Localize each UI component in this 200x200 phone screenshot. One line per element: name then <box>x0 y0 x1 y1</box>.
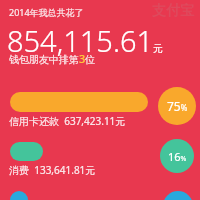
button[interactable]: 16% <box>160 139 194 173</box>
button[interactable]: Spending amount bar <box>10 142 43 161</box>
staticText: 钱包朋友中排第3位 <box>9 51 96 66</box>
button[interactable]: Transfer amount bar <box>10 191 28 200</box>
button[interactable]: Credit card repayment amount bar <box>10 92 148 112</box>
staticText: 支付宝 <box>152 2 194 20</box>
staticText: 854,115.61元 <box>7 21 164 60</box>
button[interactable]: Alipay logo <box>150 1 196 21</box>
button[interactable]: Transfer percentage <box>163 191 193 200</box>
staticText: 信用卡还款 637,423.11元 <box>9 114 126 128</box>
staticText: 消费 133,641.81元 <box>9 163 96 177</box>
staticText: 16% <box>168 149 187 164</box>
staticText: 2014年我总共花了 <box>9 6 84 18</box>
staticText: 75% <box>167 98 188 114</box>
button[interactable]: 75% <box>158 87 196 125</box>
